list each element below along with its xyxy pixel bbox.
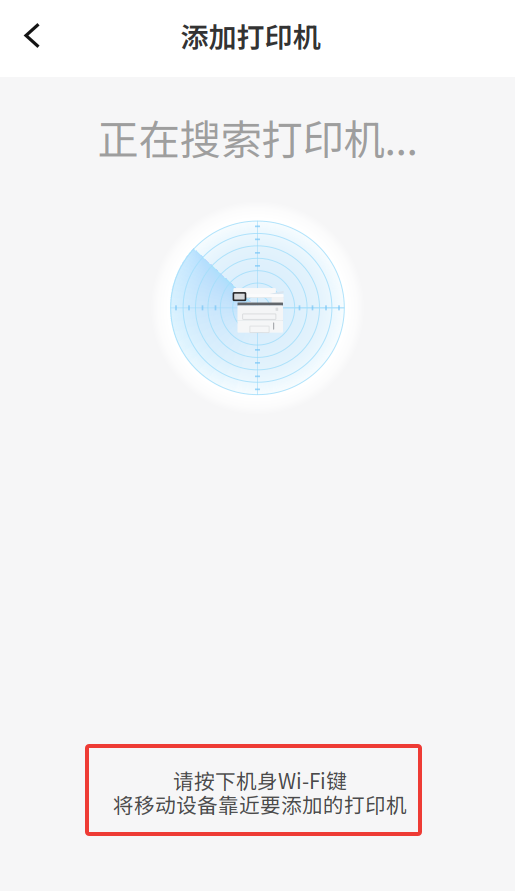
staticText: 添加打印机 <box>180 15 320 56</box>
button[interactable]: Back <box>0 12 56 65</box>
staticText: 将移动设备靠近要添加的打印机 <box>113 789 407 819</box>
staticText: 正在搜索打印机... <box>97 107 417 167</box>
staticText: 请按下机身Wi-Fi键 <box>173 765 347 795</box>
